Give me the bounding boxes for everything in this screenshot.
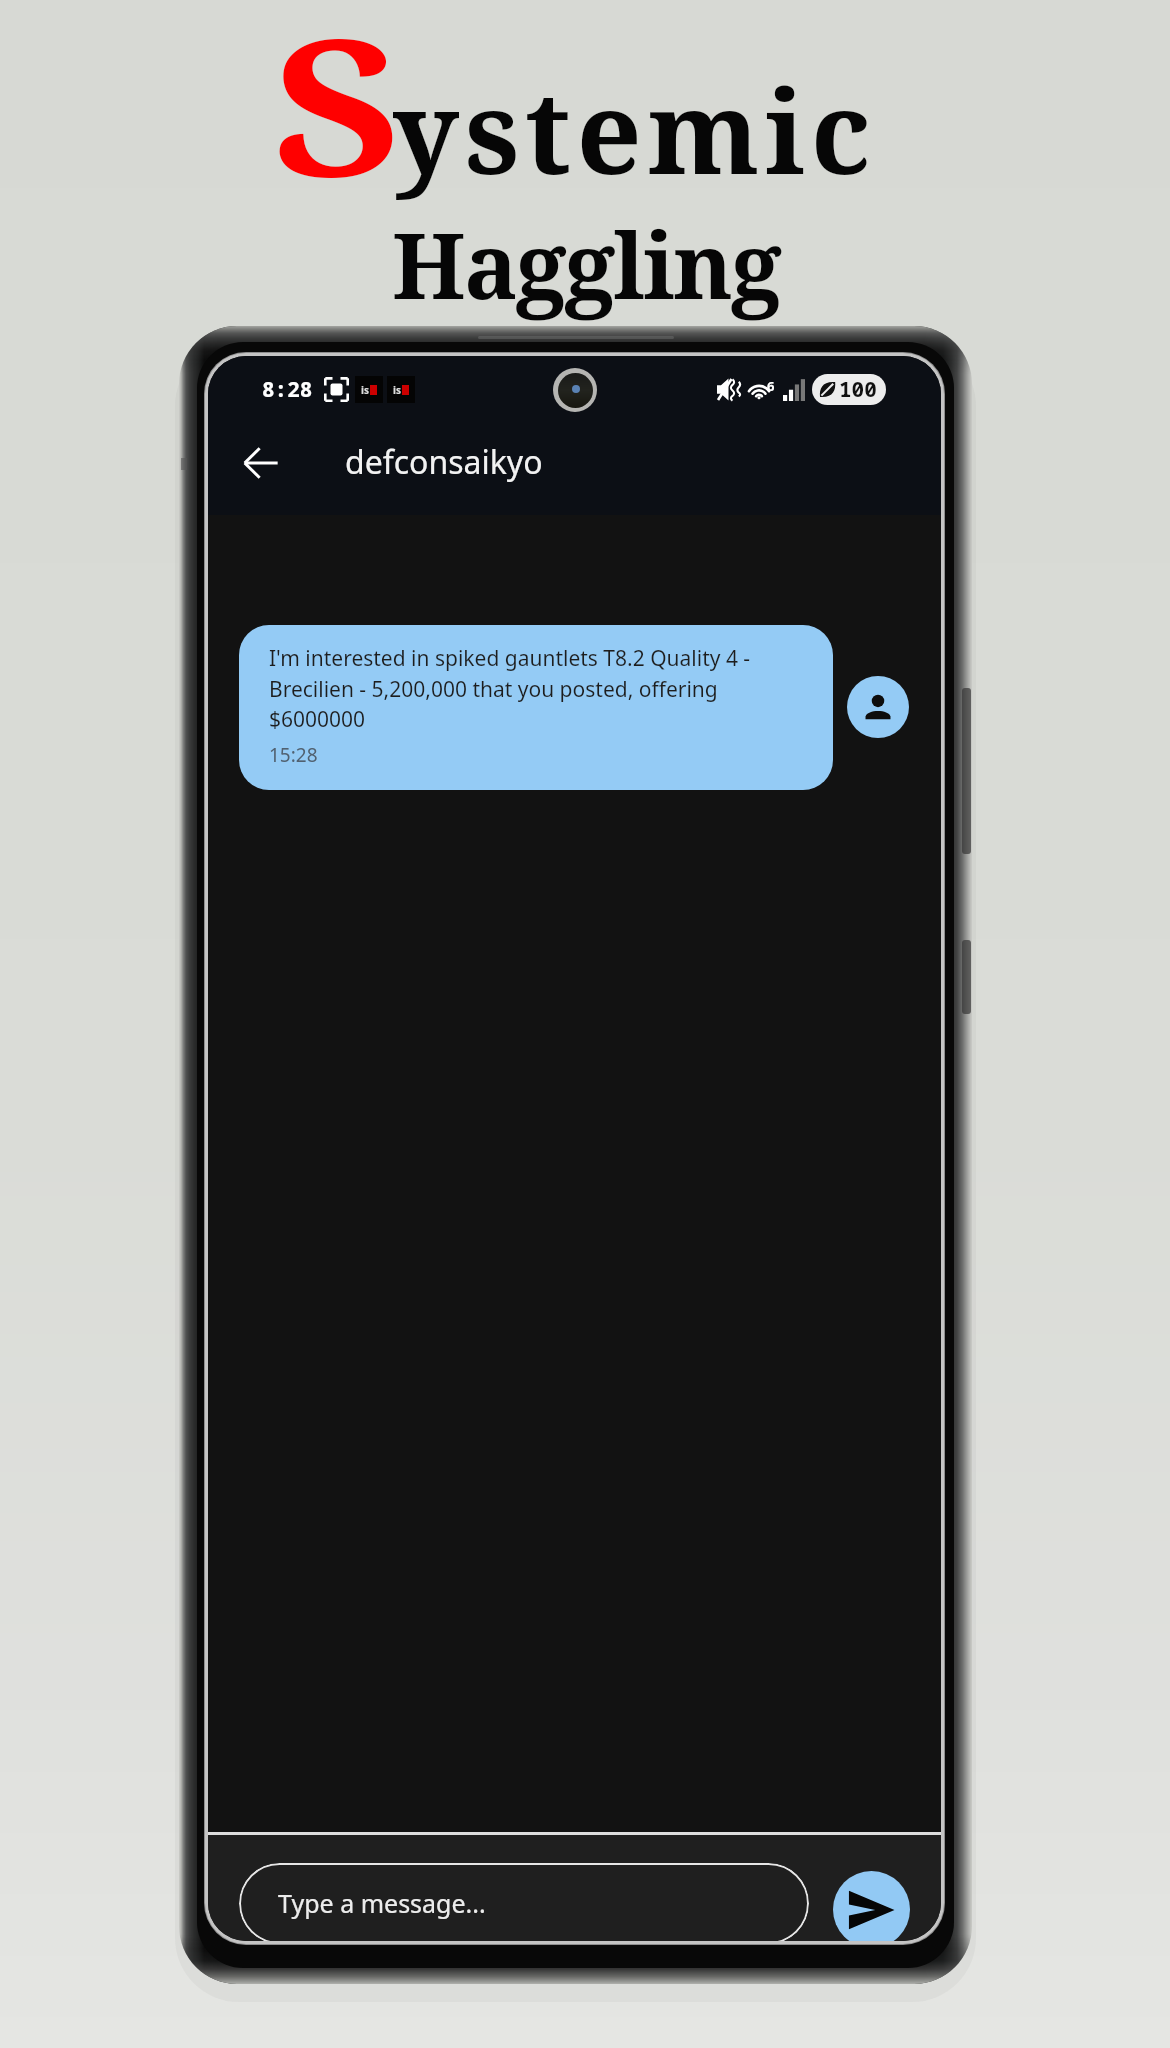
staticText: ystemic (393, 52, 877, 207)
staticText: 15:28 (269, 742, 318, 768)
button[interactable]: I'm interested in spiked gauntlets T8.2 … (239, 625, 833, 790)
staticText: 8:28 (262, 375, 313, 404)
staticText: Type a message... (278, 1886, 486, 1920)
button[interactable]: Type a message... (239, 1863, 809, 1941)
staticText: S (272, 0, 402, 232)
staticText: 100 (839, 375, 877, 404)
staticText: defconsaikyo (345, 440, 543, 484)
button[interactable]: Profile (847, 676, 909, 738)
staticText: is (361, 383, 370, 397)
staticText: Haggling (392, 203, 780, 326)
staticText: I'm interested in spiked gauntlets T8.2 … (269, 644, 775, 733)
button[interactable]: Back (230, 432, 292, 494)
staticText: is (393, 383, 402, 397)
button[interactable]: Send (833, 1871, 910, 1941)
staticText: 6 (767, 377, 775, 395)
